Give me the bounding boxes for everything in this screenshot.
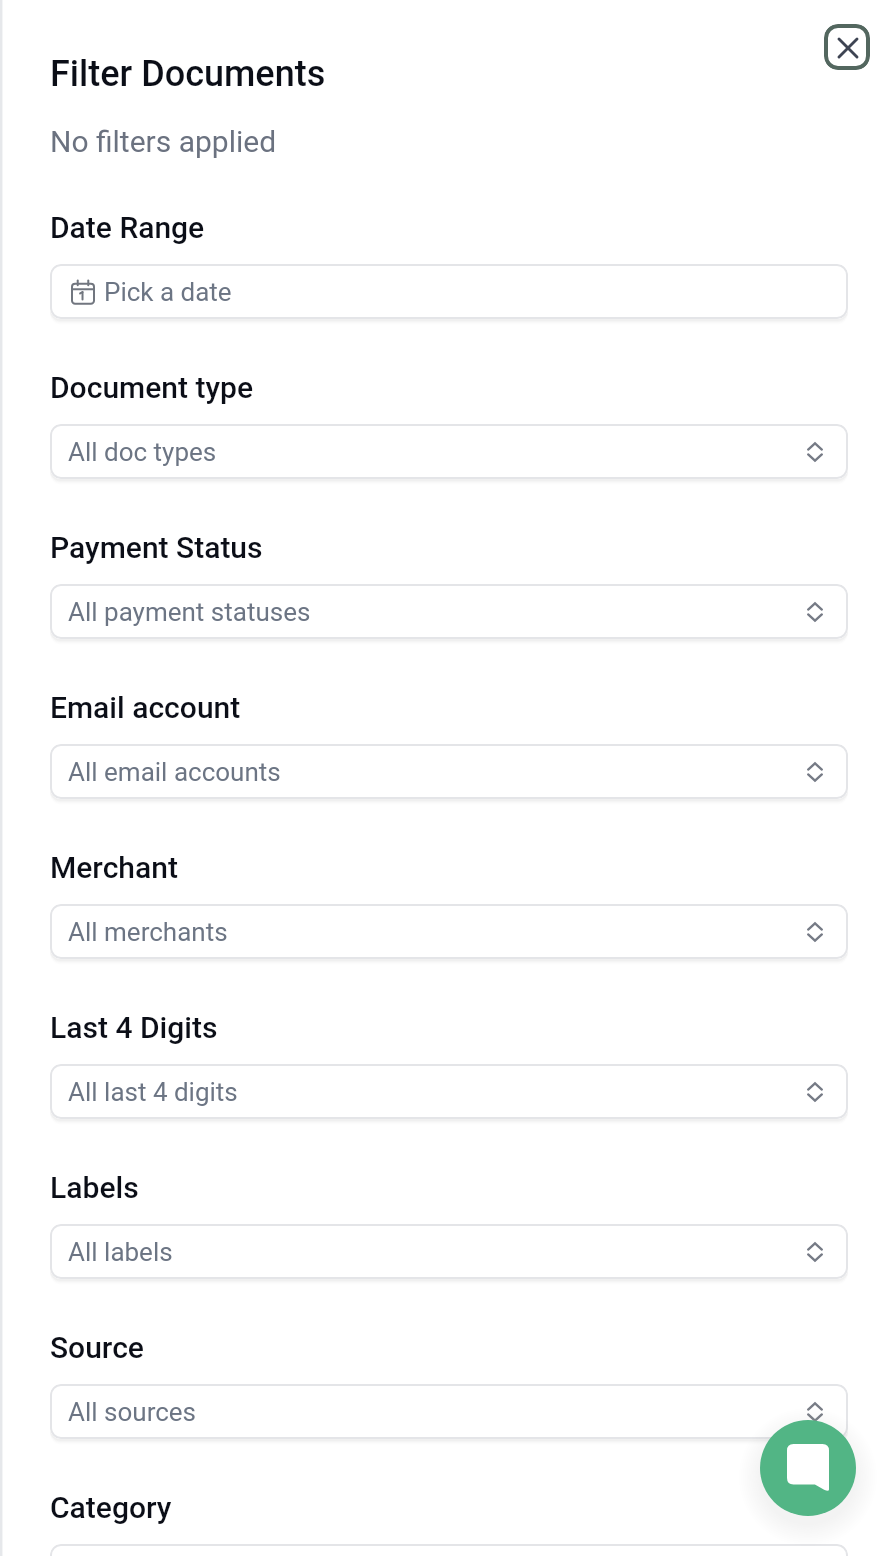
button[interactable]: Pick a date: [50, 264, 848, 319]
staticText: Filter Documents: [50, 53, 326, 95]
staticText: Labels: [50, 1170, 139, 1205]
staticText: No filters applied: [50, 124, 277, 159]
staticText: All payment statuses: [68, 597, 311, 627]
staticText: Email account: [50, 690, 241, 725]
staticText: Payment Status: [50, 530, 263, 565]
staticText: Category: [50, 1490, 172, 1525]
button[interactable]: All email accounts: [50, 744, 848, 799]
staticText: Merchant: [50, 850, 178, 885]
staticText: Last 4 Digits: [50, 1010, 218, 1045]
button[interactable]: All doc types: [50, 424, 848, 479]
staticText: Pick a date: [104, 277, 232, 307]
staticText: All merchants: [68, 917, 228, 947]
staticText: All labels: [68, 1237, 173, 1267]
button[interactable]: Close: [824, 24, 870, 70]
staticText: Date Range: [50, 210, 205, 245]
staticText: All doc types: [68, 437, 217, 467]
staticText: All email accounts: [68, 757, 281, 787]
staticText: Document type: [50, 370, 254, 405]
staticText: Source: [50, 1330, 144, 1365]
button[interactable]: All payment statuses: [50, 584, 848, 639]
button[interactable]: All sources: [50, 1384, 848, 1439]
staticText: All last 4 digits: [68, 1077, 238, 1107]
button[interactable]: All last 4 digits: [50, 1064, 848, 1119]
staticText: All sources: [68, 1397, 197, 1427]
button[interactable]: All labels: [50, 1224, 848, 1279]
button[interactable]: All merchants: [50, 904, 848, 959]
button[interactable]: Open chat: [760, 1420, 856, 1516]
button[interactable]: All categories: [50, 1544, 848, 1556]
